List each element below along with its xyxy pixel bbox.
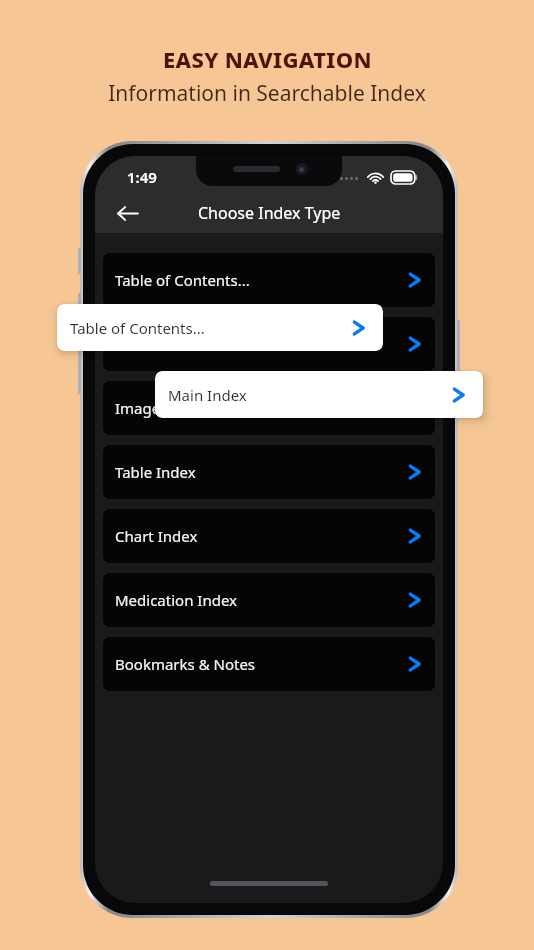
staticText: Chart Index [115,526,198,546]
button[interactable]: Image Index [103,381,435,435]
staticText: Table of Contents... [70,318,205,338]
button[interactable]: Medication Index [103,573,435,627]
staticText: Image Index [115,398,204,418]
button[interactable]: Bookmarks & Notes [103,637,435,691]
button[interactable]: Table Index [103,445,435,499]
staticText: EASY NAVIGATION [163,44,372,74]
button[interactable]: Main Index [103,317,435,371]
staticText: Information in Searchable Index [108,79,426,108]
staticText: Table of Contents... [115,270,250,290]
staticText: Main Index [168,385,247,405]
staticText: Bookmarks & Notes [115,654,256,674]
staticText: Main Index [115,334,194,354]
staticText: 1:49 [127,167,157,187]
button[interactable]: Back [107,193,147,233]
button[interactable]: Table of Contents... [57,304,383,351]
button[interactable]: Chart Index [103,509,435,563]
staticText: Table Index [115,462,196,482]
staticText: Medication Index [115,590,237,610]
button[interactable]: Table of Contents... [103,253,435,307]
button[interactable]: Main Index [155,371,483,418]
staticText: Choose Index Type [198,202,341,224]
